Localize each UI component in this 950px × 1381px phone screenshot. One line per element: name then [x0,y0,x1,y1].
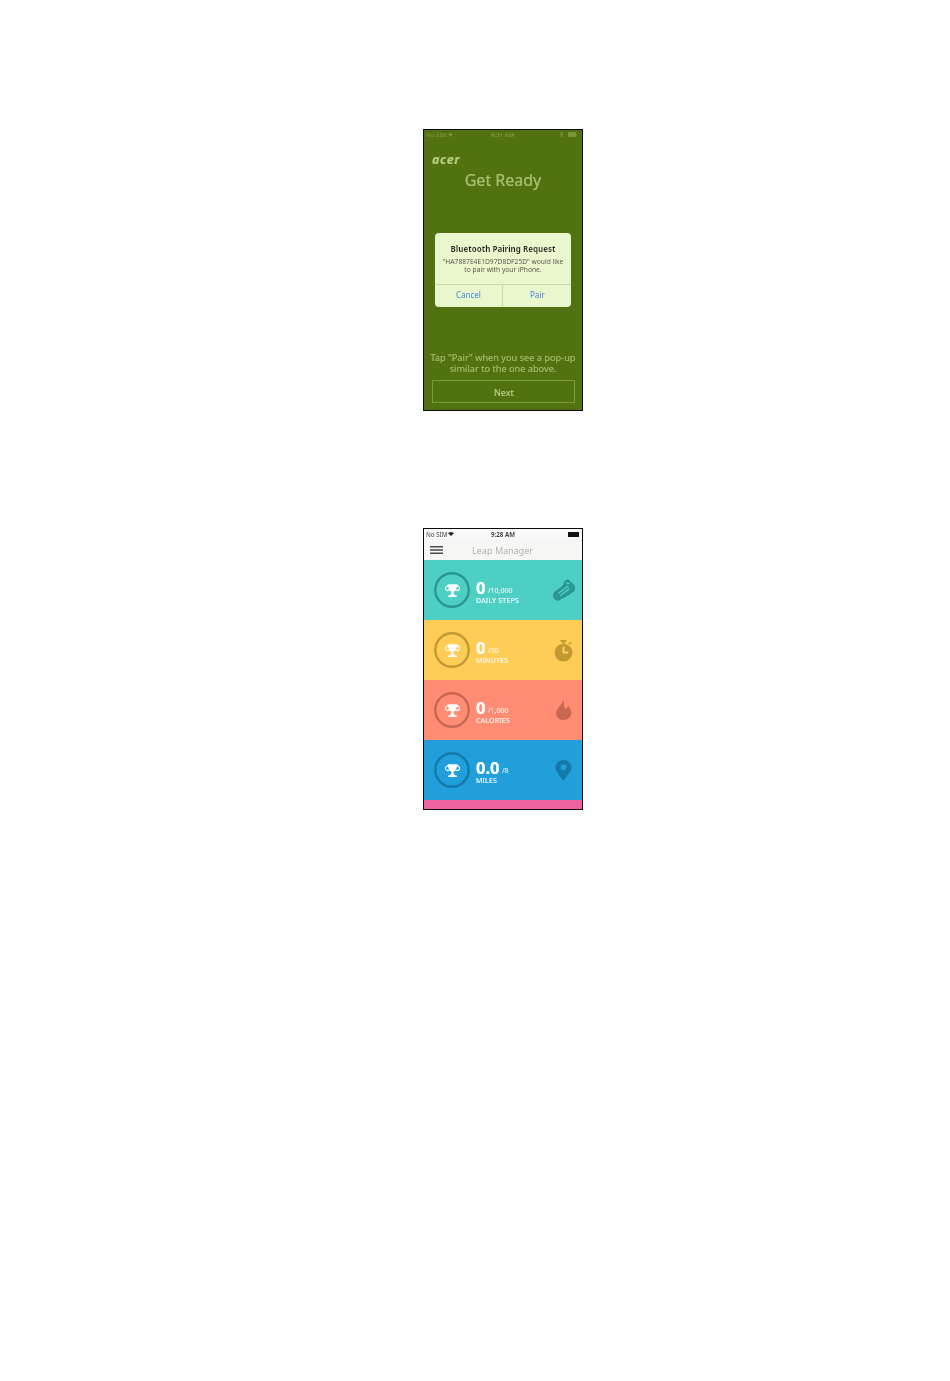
staticText: 9:28 AM [491,530,516,538]
staticText: Cancel [456,289,481,300]
staticText: 0 [476,636,486,658]
staticText: /30 [488,646,499,656]
staticText: 9:31 AM [491,131,515,139]
button[interactable]: 0 [424,680,582,740]
staticText: Pair [530,289,545,300]
staticText: Tap "Pair" when you see a pop-up similar… [424,351,582,375]
staticText: acer [432,151,461,168]
staticText: Leap Manager [472,544,534,556]
staticText: Get Ready [424,169,582,191]
staticText: /10,000 [488,586,513,596]
button[interactable]: 0 [424,560,582,620]
staticText: MINUTES [476,656,509,666]
staticText: CALORIES [476,716,510,726]
staticText: No SIM [426,530,448,538]
staticText: No SIM [426,131,447,139]
button[interactable]: Open navigation menu [428,543,444,557]
staticText: /1,000 [488,706,509,716]
staticText: 0 [476,696,486,718]
staticText: "HA7887E4E1D97D8DF25D" would like to pai… [435,257,571,274]
staticText: 0.0 [476,756,500,778]
staticText: Next [494,386,514,398]
button[interactable]: Next [432,380,575,403]
staticText: MILES [476,776,498,786]
staticText: Bluetooth Pairing Request [435,243,571,254]
button[interactable]: Cancel [435,285,502,307]
staticText: /8 [502,766,509,776]
button[interactable]: 0.0 [424,740,582,800]
staticText: 0 [476,576,486,598]
button[interactable]: 0 [424,620,582,680]
button[interactable]: Pair [503,285,571,307]
staticText: DAILY STEPS [476,596,519,606]
